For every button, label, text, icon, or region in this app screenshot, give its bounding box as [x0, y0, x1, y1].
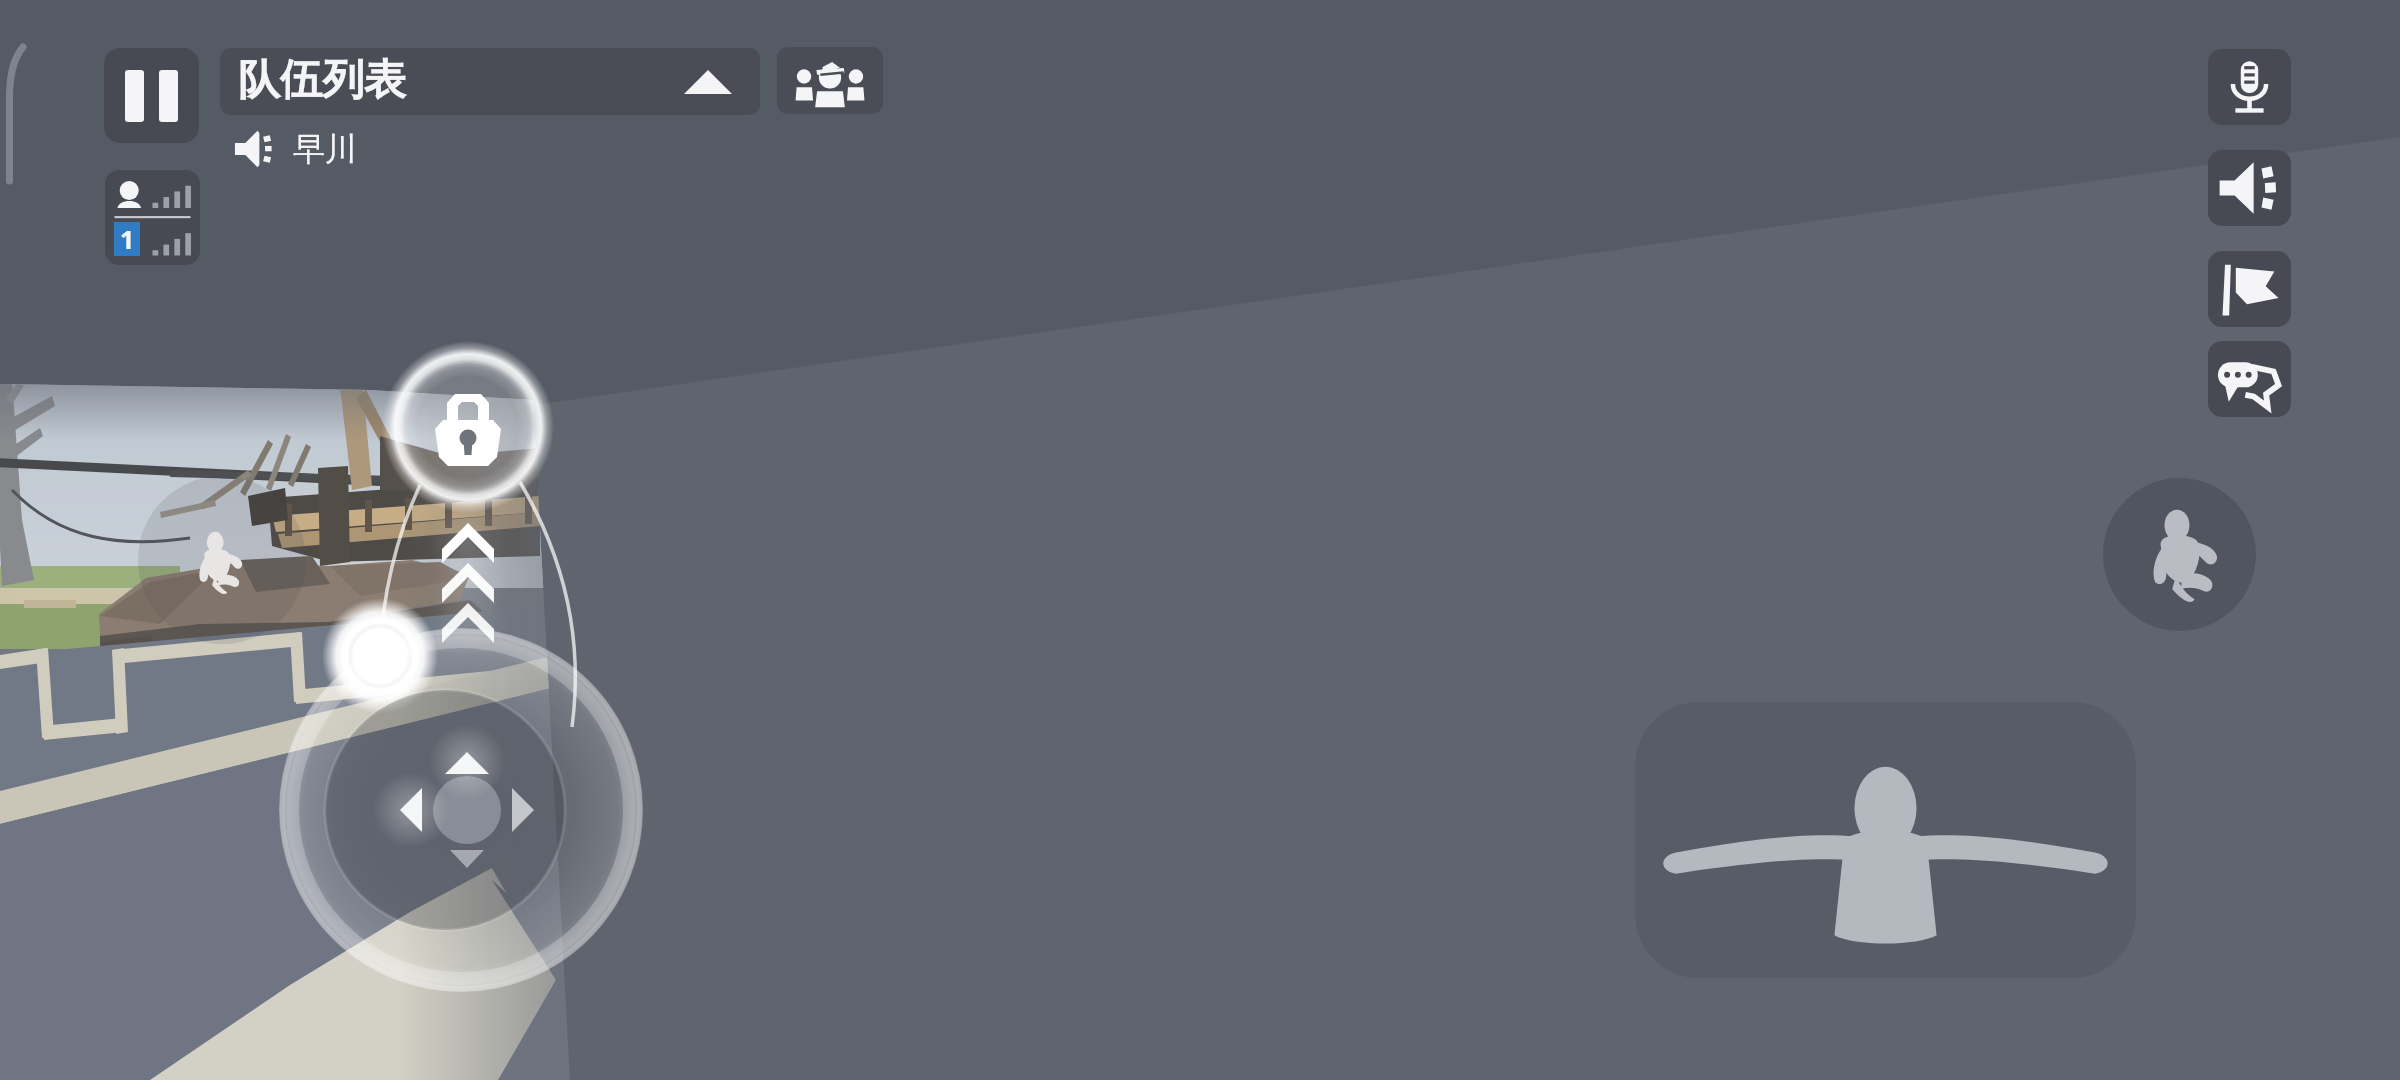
staticText: 早川 — [293, 129, 357, 169]
button[interactable]: 队伍列表 — [220, 48, 760, 115]
button[interactable]: 早川 — [232, 129, 359, 169]
button[interactable]: Microphone — [2208, 49, 2291, 125]
button[interactable]: Sprint — [430, 515, 506, 645]
button[interactable]: Chat — [2208, 341, 2291, 417]
button[interactable]: Movement joystick — [279, 628, 643, 992]
button[interactable]: Network status — [105, 170, 200, 265]
button[interactable]: Pause — [104, 48, 199, 143]
button[interactable]: Stand — [1635, 702, 2136, 978]
staticText: 队伍列表 — [238, 54, 406, 107]
button[interactable]: Sound — [2208, 150, 2291, 226]
button[interactable]: Lock view — [398, 357, 538, 497]
button[interactable]: Crouch — [2103, 478, 2256, 631]
button[interactable]: Mark — [2208, 251, 2291, 327]
button[interactable]: Team — [777, 47, 883, 114]
button[interactable]: Fire — [322, 598, 438, 714]
staticText: 1 — [120, 222, 135, 256]
